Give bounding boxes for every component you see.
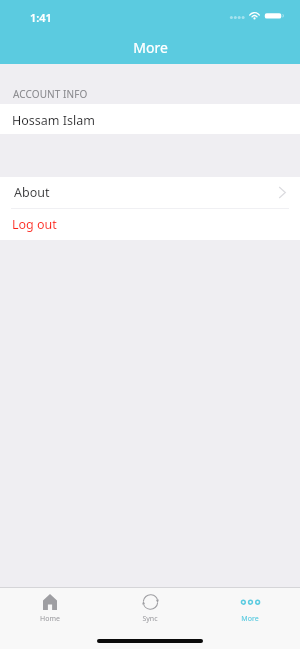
- button[interactable]: About: [0, 177, 300, 208]
- button[interactable]: Hossam Islam: [0, 104, 300, 134]
- button[interactable]: More: [200, 588, 300, 624]
- button[interactable]: Home: [0, 588, 100, 624]
- staticText: More: [133, 38, 168, 57]
- staticText: About: [14, 184, 50, 201]
- staticText: More: [241, 614, 259, 624]
- staticText: ACCOUNT INFO: [13, 87, 88, 101]
- staticText: Hossam Islam: [12, 112, 95, 129]
- staticText: Sync: [142, 614, 158, 624]
- button[interactable]: Log out: [0, 209, 300, 240]
- staticText: 1:41: [30, 10, 52, 25]
- staticText: Log out: [12, 216, 57, 233]
- button[interactable]: Sync: [100, 588, 200, 624]
- staticText: Home: [40, 614, 60, 624]
